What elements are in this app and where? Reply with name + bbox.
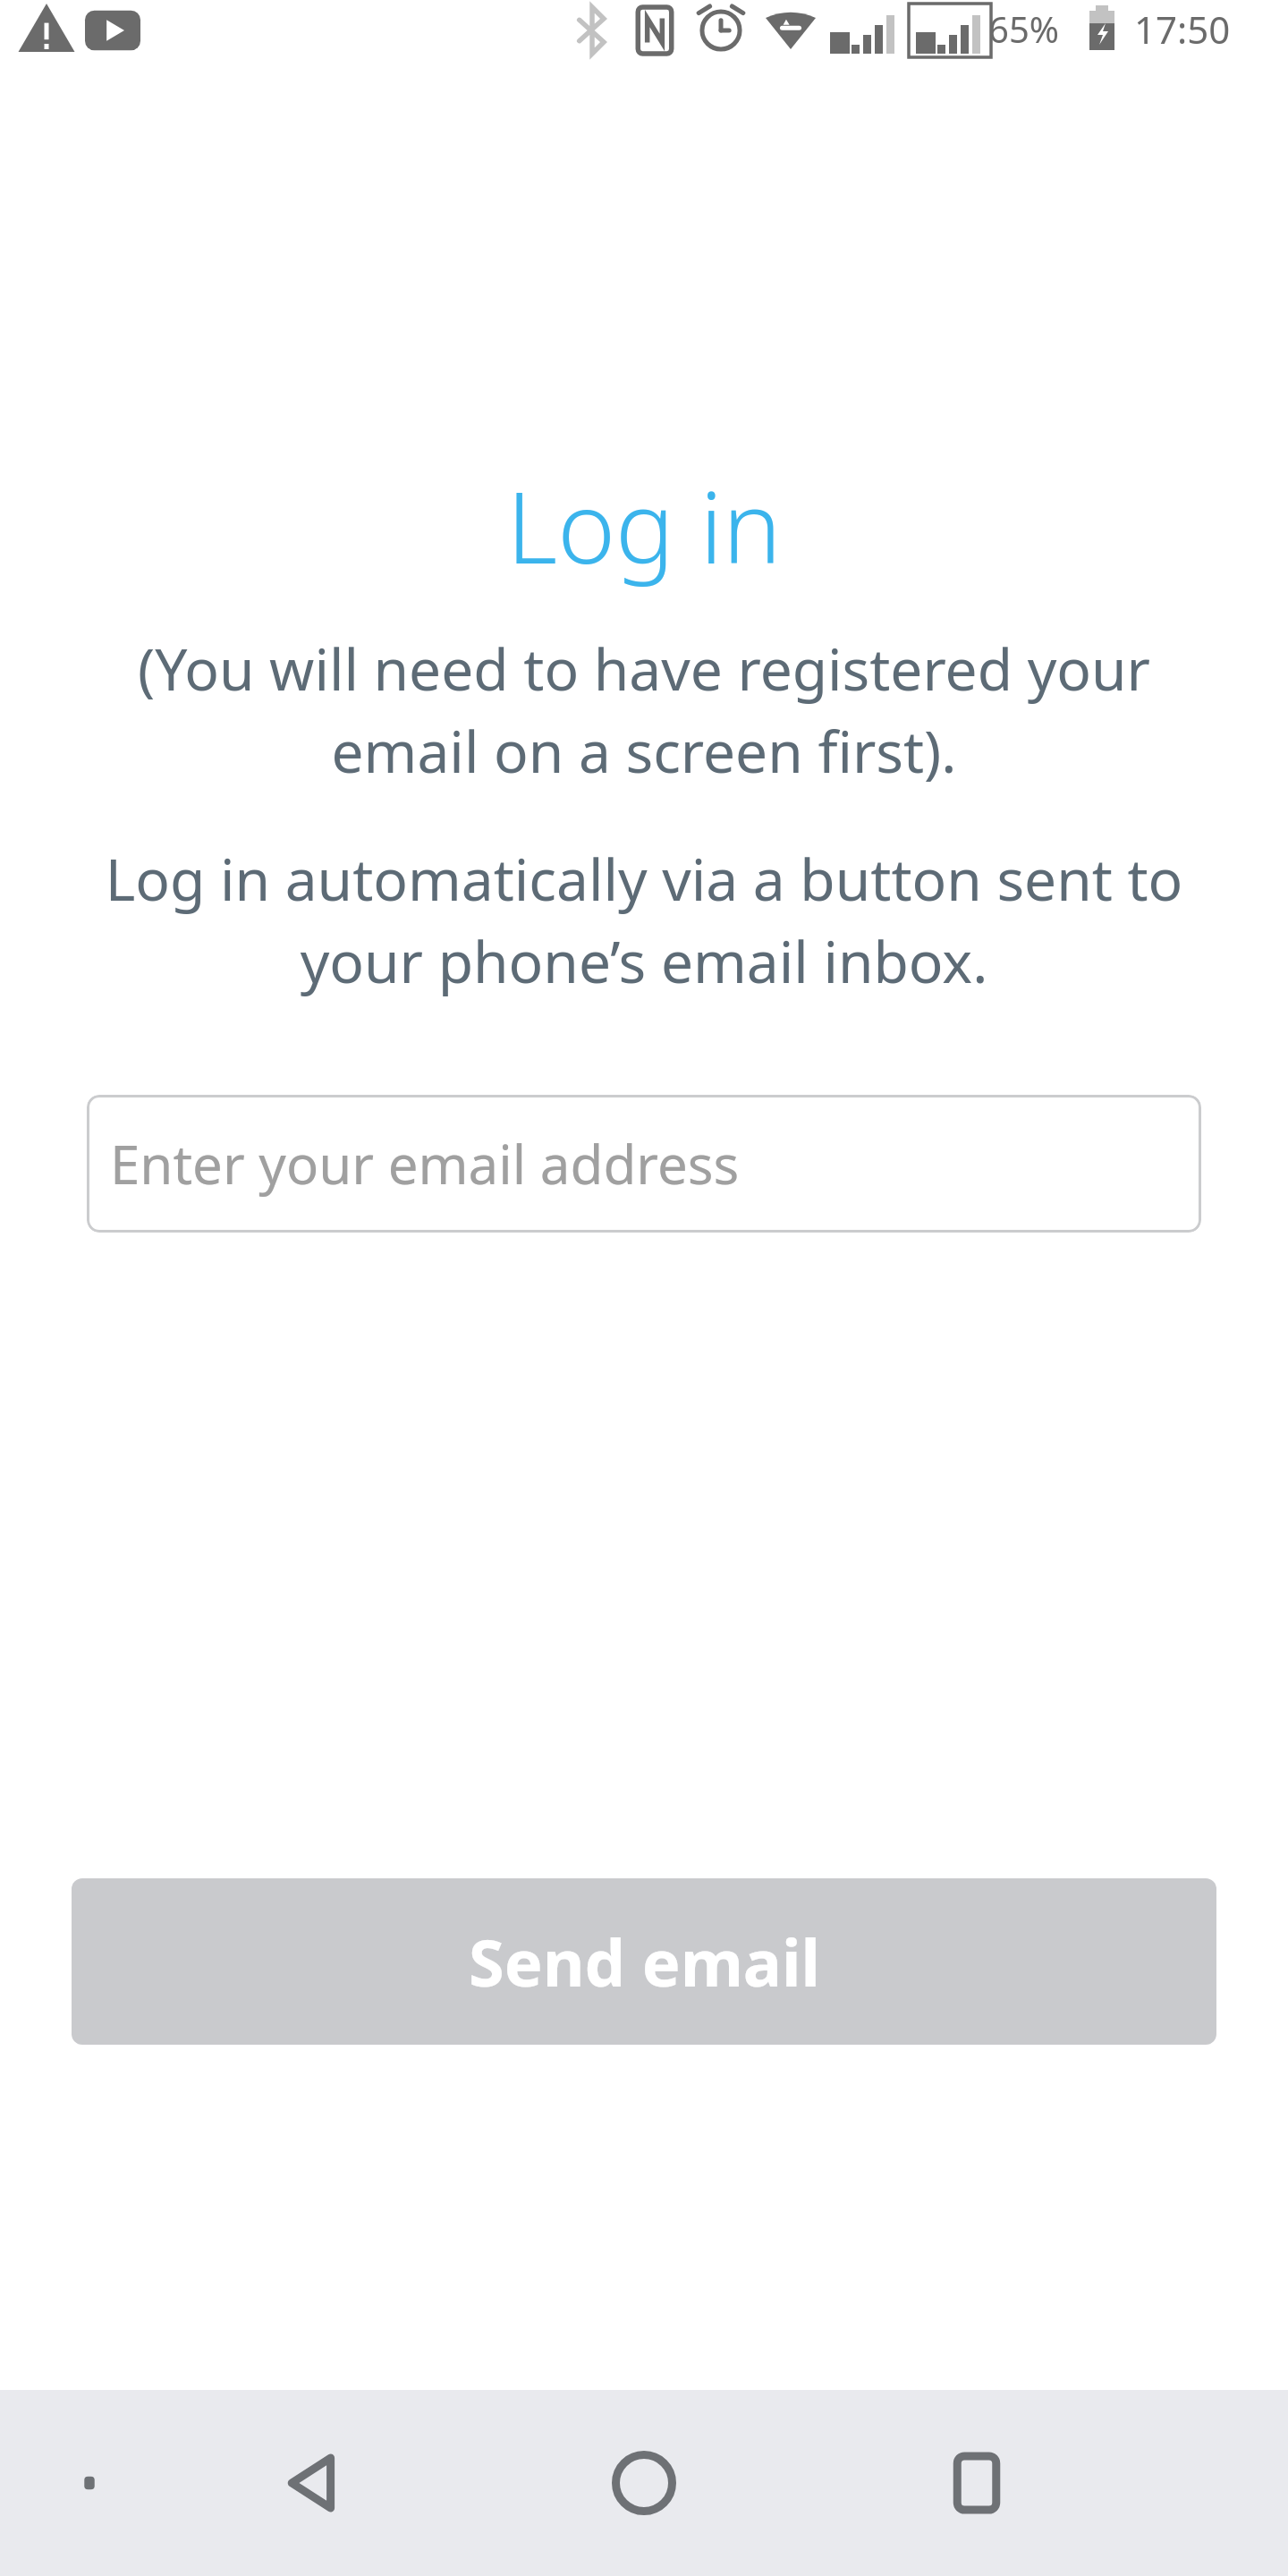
staticText: (You will need to have registered your e… (79, 630, 1209, 790)
staticText: Send email (469, 1918, 820, 2005)
button[interactable]: Menu (50, 2444, 129, 2522)
staticText: Enter your email address (110, 1127, 740, 1200)
button[interactable]: Recent apps (912, 2419, 1041, 2547)
button[interactable]: Back (249, 2419, 377, 2547)
staticText: Log in (0, 458, 1288, 592)
button[interactable]: Home (580, 2419, 708, 2547)
button[interactable]: Enter your email address (87, 1095, 1201, 1233)
staticText: Log in automatically via a button sent t… (68, 840, 1220, 1000)
staticText: 65% (988, 4, 1059, 53)
staticText: 17:50 (1134, 4, 1231, 55)
button[interactable]: Send email (72, 1878, 1216, 2045)
